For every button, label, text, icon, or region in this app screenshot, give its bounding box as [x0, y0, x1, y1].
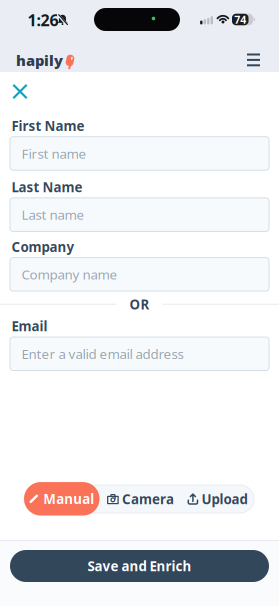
button[interactable]: Close [8, 80, 31, 103]
staticText: Camera [122, 490, 174, 508]
button[interactable]: Menu [238, 45, 269, 74]
staticText: Last Name [11, 178, 82, 196]
staticText: 74 [234, 12, 246, 27]
staticText: Enter a valid email address [21, 345, 183, 363]
button[interactable]: Last name [10, 198, 269, 231]
staticText: hapily [16, 50, 63, 70]
staticText: First Name [11, 117, 84, 135]
button[interactable]: Save and Enrich [10, 550, 269, 582]
staticText: First name [21, 145, 86, 162]
button[interactable]: Company name [10, 258, 269, 291]
staticText: Company [11, 238, 74, 256]
staticText: 1:26 [27, 9, 58, 31]
staticText: Upload [201, 490, 247, 508]
staticText: Save and Enrich [87, 557, 191, 575]
button[interactable]: Manual [24, 482, 99, 516]
button[interactable]: Enter a valid email address [10, 337, 269, 370]
button[interactable]: First name [10, 137, 269, 170]
button[interactable]: Upload [181, 485, 253, 513]
staticText: OR [129, 295, 149, 313]
button[interactable]: Camera [102, 485, 178, 513]
staticText: Manual [43, 490, 94, 508]
staticText: Last name [21, 206, 84, 223]
staticText: Email [11, 317, 47, 335]
staticText: Company name [21, 265, 117, 283]
